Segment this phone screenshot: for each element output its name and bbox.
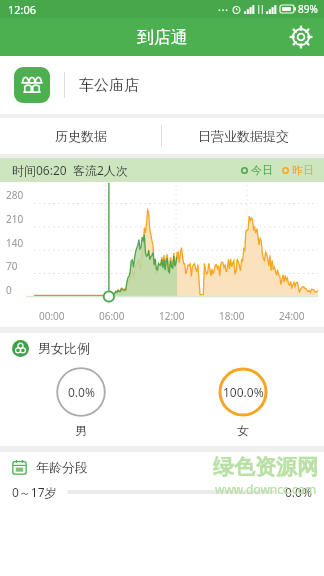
staticText: 210 bbox=[6, 212, 24, 226]
button[interactable]: 车公庙店 bbox=[0, 56, 324, 114]
staticText: 车公庙店 bbox=[79, 76, 139, 95]
staticText: 140 bbox=[6, 236, 24, 250]
staticText: 昨日 bbox=[292, 163, 314, 177]
staticText: 280 bbox=[6, 188, 24, 202]
staticText: 70 bbox=[6, 259, 18, 273]
staticText: 时间06:20 客流2人次 bbox=[12, 162, 128, 178]
staticText: 00:00 bbox=[39, 309, 65, 323]
staticText: 0 bbox=[6, 283, 12, 297]
staticText: 0.0% bbox=[68, 384, 95, 400]
staticText: 0～17岁 bbox=[12, 484, 57, 500]
staticText: 年龄分段 bbox=[36, 459, 88, 475]
staticText: 男女比例 bbox=[38, 340, 90, 356]
staticText: 0.0% bbox=[285, 484, 312, 500]
button[interactable]: 日营业数据提交 bbox=[162, 118, 324, 154]
staticText: 男 bbox=[75, 423, 87, 438]
staticText: 18:00 bbox=[219, 309, 245, 323]
staticText: 12:00 bbox=[159, 309, 185, 323]
staticText: 24:00 bbox=[279, 309, 305, 323]
button[interactable]: 100.0% bbox=[162, 367, 324, 438]
staticText: 12:06 bbox=[8, 2, 37, 17]
staticText: 100.0% bbox=[223, 384, 264, 400]
button[interactable]: 历史数据 bbox=[0, 118, 161, 154]
staticText: 06:00 bbox=[99, 309, 125, 323]
button[interactable]: 0.0% bbox=[0, 367, 162, 438]
staticText: 女 bbox=[237, 423, 249, 438]
staticText: 历史数据 bbox=[55, 128, 107, 144]
staticText: 89% bbox=[298, 2, 318, 16]
staticText: 今日 bbox=[251, 163, 273, 177]
staticText: 绿色资源网 bbox=[213, 454, 318, 480]
button[interactable]: Settings bbox=[286, 22, 316, 52]
staticText: www.downcc.com bbox=[215, 481, 317, 497]
staticText: 日营业数据提交 bbox=[198, 128, 289, 144]
staticText: 到店通 bbox=[137, 27, 188, 48]
